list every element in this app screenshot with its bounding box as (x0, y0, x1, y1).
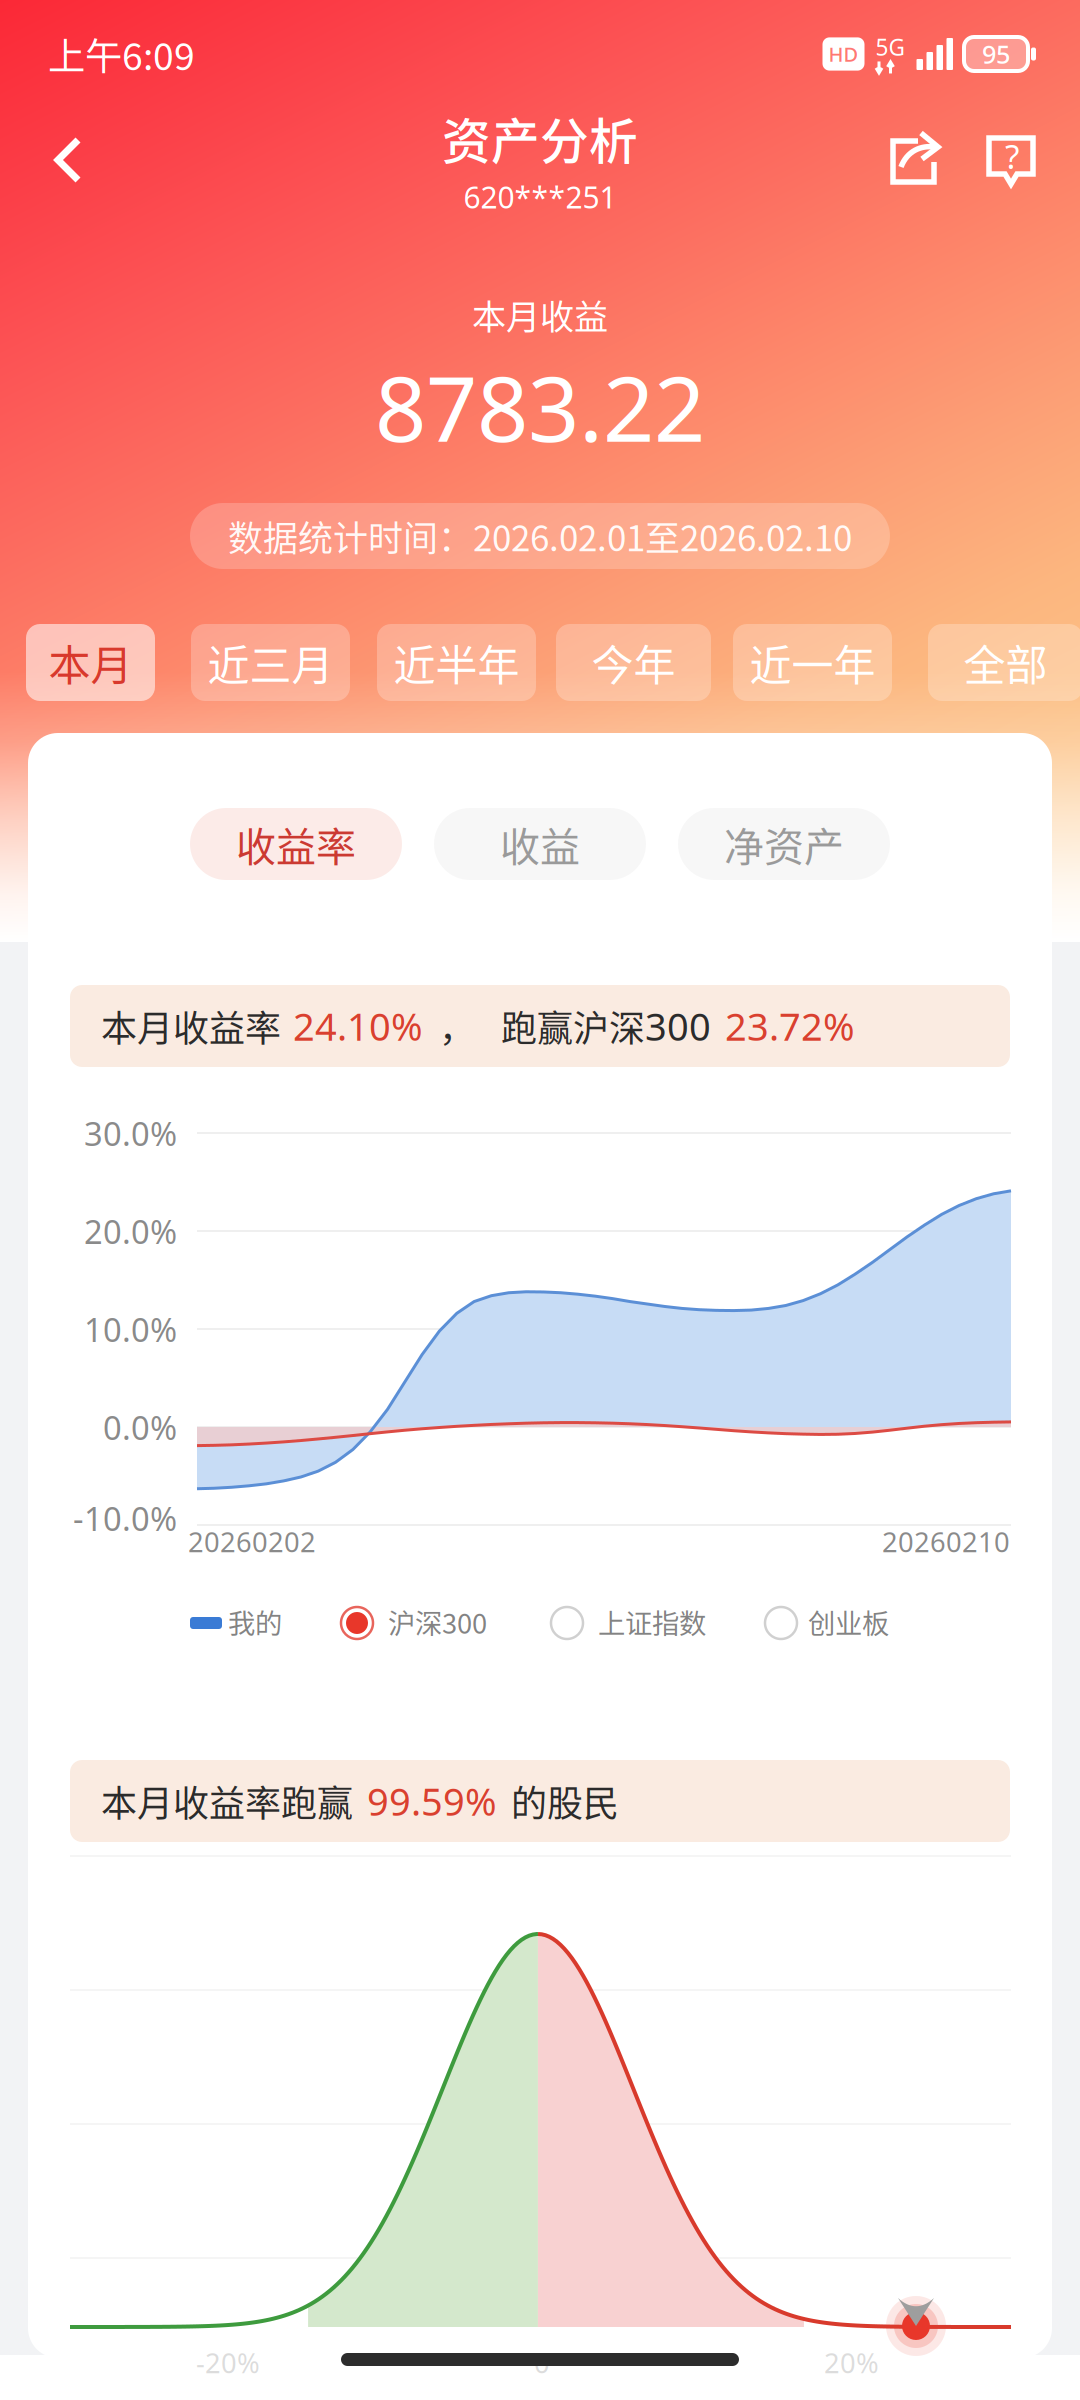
button[interactable]: Help (964, 110, 1060, 210)
staticText: 本月收益 (472, 290, 608, 339)
staticText: -10.0% (73, 1496, 177, 1540)
button[interactable]: Back (14, 110, 122, 210)
staticText: 20260202 (188, 1523, 316, 1560)
staticText: 资产分析 (442, 103, 638, 173)
staticText: 20% (824, 2344, 879, 2381)
staticText: 跑赢沪深 (501, 1000, 645, 1052)
button[interactable]: Share (868, 110, 964, 210)
staticText: 近一年 (749, 632, 875, 693)
staticText: 95 (982, 37, 1010, 71)
staticText: 20.0% (84, 1209, 177, 1253)
staticText: 沪深300 (388, 1602, 487, 1642)
button[interactable]: 今年 (556, 624, 711, 701)
button[interactable]: 近半年 (377, 624, 536, 701)
staticText: 30.0% (84, 1111, 177, 1155)
staticText: 620***251 (463, 176, 616, 217)
staticText: 收益 (500, 815, 580, 873)
staticText: 10.0% (84, 1307, 177, 1351)
staticText: 全部 (963, 632, 1047, 693)
staticText: 8783.22 (375, 345, 705, 468)
staticText: ? (1005, 133, 1019, 179)
staticText: 我的 (228, 1602, 282, 1642)
button[interactable]: 近一年 (733, 624, 892, 701)
staticText: 上午6:09 (48, 27, 195, 81)
staticText: 0.0% (103, 1405, 177, 1449)
button[interactable]: 净资产 (678, 808, 890, 880)
staticText: 300 (645, 1000, 711, 1052)
staticText: HD (828, 40, 858, 68)
staticText: 的股民 (511, 1775, 619, 1827)
staticText: 23.72% (725, 1000, 855, 1052)
button[interactable]: 收益 (434, 808, 646, 880)
staticText: ， (439, 1000, 475, 1052)
button[interactable]: 本月 (26, 624, 155, 701)
staticText: 24.10% (293, 1000, 423, 1052)
staticText: 20260210 (882, 1523, 1010, 1560)
staticText: 5G (875, 32, 905, 62)
staticText: 收益率 (236, 815, 356, 873)
button[interactable]: 收益率 (190, 808, 402, 880)
staticText: 上证指数 (598, 1602, 706, 1642)
staticText: 0 (534, 2344, 550, 2381)
staticText: -20% (196, 2344, 260, 2381)
staticText: 创业板 (808, 1602, 889, 1642)
button[interactable]: 近三月 (191, 624, 350, 701)
staticText: 净资产 (724, 815, 844, 873)
staticText: 今年 (591, 632, 675, 693)
button[interactable]: 全部 (928, 624, 1080, 701)
staticText: 本月收益率跑赢 (101, 1775, 353, 1827)
staticText: 近半年 (393, 632, 519, 693)
staticText: 99.59% (367, 1775, 497, 1827)
staticText: 本月收益率 (101, 1000, 281, 1052)
staticText: 近三月 (207, 632, 333, 693)
staticText: 本月 (48, 632, 132, 693)
staticText: 数据统计时间：2026.02.01至2026.02.10 (228, 511, 852, 561)
